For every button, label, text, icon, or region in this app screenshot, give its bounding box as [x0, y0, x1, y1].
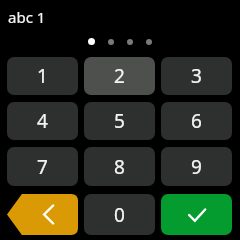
- staticText: 8: [114, 154, 125, 180]
- button[interactable]: 7: [7, 147, 78, 186]
- button[interactable]: Back: [7, 194, 78, 235]
- button[interactable]: 5: [84, 102, 155, 140]
- button[interactable]: 6: [161, 102, 232, 140]
- button[interactable]: 9: [161, 147, 232, 186]
- staticText: 6: [191, 108, 202, 134]
- button[interactable]: 2: [84, 57, 155, 95]
- staticText: 0: [114, 202, 125, 228]
- button[interactable]: 3: [161, 57, 232, 95]
- staticText: 7: [37, 154, 48, 180]
- button[interactable]: 1: [7, 57, 78, 95]
- staticText: 1: [37, 63, 48, 89]
- button[interactable]: 8: [84, 147, 155, 186]
- staticText: 3: [191, 63, 202, 89]
- staticText: 4: [37, 108, 48, 134]
- staticText: 5: [114, 108, 125, 134]
- button[interactable]: Confirm: [161, 194, 232, 235]
- staticText: 2: [114, 63, 125, 89]
- button[interactable]: 4: [7, 102, 78, 140]
- staticText: abc 1: [8, 7, 46, 27]
- button[interactable]: 0: [84, 194, 155, 235]
- staticText: 9: [191, 154, 202, 180]
